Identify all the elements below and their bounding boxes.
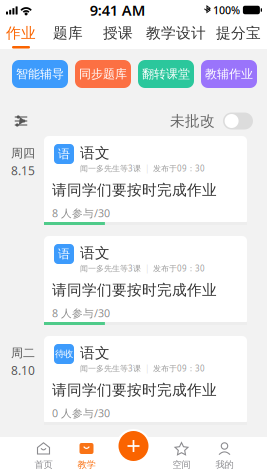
staticText: 发布于09：30 bbox=[153, 163, 205, 174]
staticText: 语文 bbox=[80, 244, 110, 262]
button[interactable]: 同步题库 bbox=[75, 60, 131, 88]
staticText: 提分宝 bbox=[216, 24, 261, 42]
staticText: 教学设计 bbox=[146, 24, 206, 42]
staticText: 空间 bbox=[172, 459, 190, 470]
button[interactable]: 我的 bbox=[203, 437, 246, 474]
button[interactable]: 筛选 bbox=[6, 109, 36, 133]
staticText: 闻一多先生等3课 bbox=[80, 363, 141, 374]
staticText: 同步题库 bbox=[79, 67, 127, 81]
staticText: 周二 bbox=[11, 346, 35, 360]
staticText: 8 人参与/30 bbox=[52, 306, 110, 320]
staticText: 题库 bbox=[53, 24, 83, 42]
button[interactable]: 智能辅导 bbox=[12, 60, 68, 88]
staticText: 翻转课堂 bbox=[142, 67, 190, 81]
staticText: 请同学们要按时完成作业 bbox=[52, 381, 217, 399]
staticText: 8.15 bbox=[11, 163, 35, 179]
staticText: | bbox=[145, 363, 149, 374]
staticText: 0 人参与/30 bbox=[52, 406, 110, 420]
staticText: 作业 bbox=[6, 24, 36, 42]
staticText: 教辅作业 bbox=[205, 67, 253, 81]
staticText: 授课 bbox=[103, 24, 133, 42]
staticText: 闻一多先生等3课 bbox=[80, 163, 141, 174]
button[interactable]: 提分宝 bbox=[210, 20, 267, 49]
button[interactable]: 翻转课堂 bbox=[138, 60, 194, 88]
staticText: 请同学们要按时完成作业 bbox=[52, 281, 217, 299]
staticText: 8.10 bbox=[11, 362, 35, 378]
button[interactable]: 新建 bbox=[116, 429, 150, 463]
staticText: 发布于09：30 bbox=[153, 363, 205, 374]
staticText: 语 bbox=[58, 147, 70, 161]
button[interactable]: 未批改开关 bbox=[215, 112, 253, 129]
staticText: 待收 bbox=[55, 348, 73, 360]
button[interactable]: 教辅作业 bbox=[201, 60, 257, 88]
staticText: 首页 bbox=[34, 459, 52, 470]
staticText: | bbox=[145, 263, 149, 274]
button[interactable]: 首页 bbox=[22, 437, 65, 474]
staticText: 闻一多先生等3课 bbox=[80, 263, 141, 274]
button[interactable]: 空间 bbox=[160, 437, 203, 474]
button[interactable]: 教学设计 bbox=[142, 20, 210, 49]
button[interactable]: 待收 bbox=[44, 336, 247, 425]
button[interactable]: 作业 bbox=[0, 20, 42, 49]
button[interactable]: 语 bbox=[44, 136, 247, 225]
staticText: 100% bbox=[213, 3, 240, 17]
staticText: 语文 bbox=[80, 144, 110, 162]
staticText: 发布于09：30 bbox=[153, 263, 205, 274]
staticText: 8 人参与/30 bbox=[52, 206, 110, 220]
button[interactable]: 教学 bbox=[65, 437, 108, 474]
staticText: 语文 bbox=[80, 344, 110, 362]
staticText: 我的 bbox=[215, 459, 233, 470]
staticText: 9:41 AM bbox=[90, 0, 146, 20]
staticText: 教学 bbox=[77, 459, 95, 470]
button[interactable]: 题库 bbox=[42, 20, 94, 49]
staticText: 智能辅导 bbox=[16, 67, 64, 81]
staticText: 周四 bbox=[11, 146, 35, 161]
staticText: | bbox=[145, 163, 149, 174]
staticText: 未批改 bbox=[170, 112, 215, 130]
staticText: 语 bbox=[58, 247, 70, 261]
staticText: 请同学们要按时完成作业 bbox=[52, 181, 217, 199]
button[interactable]: 授课 bbox=[94, 20, 142, 49]
button[interactable]: 语 bbox=[44, 236, 247, 325]
